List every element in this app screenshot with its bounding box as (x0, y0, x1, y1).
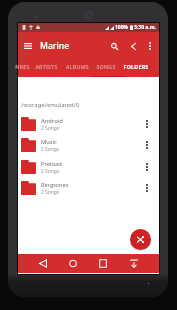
button[interactable]: More options (143, 39, 157, 53)
staticText: Marine (40, 40, 70, 52)
staticText: /storage/emulated/0 (21, 101, 80, 109)
button[interactable]: More options (139, 159, 155, 175)
staticText: Music (41, 138, 57, 146)
button[interactable]: Open navigation menu (21, 39, 35, 53)
button[interactable]: SONGS (89, 55, 123, 77)
staticText: 3:30 a.m. (134, 24, 156, 31)
button[interactable]: Equalizer (126, 39, 140, 53)
staticText: ALBUMS (66, 63, 89, 70)
staticText: SONGS (96, 63, 116, 70)
staticText: Preload (41, 160, 62, 168)
button[interactable]: More options (139, 180, 155, 196)
staticText: 2 Songs (41, 146, 60, 153)
button[interactable]: Recent apps (95, 254, 111, 270)
staticText: 100% (115, 24, 129, 31)
staticText: FOLDERS (123, 63, 149, 70)
staticText: Android (41, 117, 63, 125)
button[interactable]: Back (35, 254, 51, 270)
button[interactable]: Hide keyboard (126, 254, 142, 270)
staticText: NRES (15, 63, 30, 70)
staticText: ARTISTS (35, 63, 58, 70)
button[interactable]: Preload (18, 156, 159, 178)
staticText: 2 Songs (41, 189, 60, 196)
button[interactable]: FOLDERS (119, 55, 153, 77)
button[interactable]: Music (18, 134, 159, 156)
button[interactable]: Shuffle (130, 229, 151, 250)
button[interactable]: Android (18, 113, 159, 135)
button[interactable]: Search (107, 39, 121, 53)
button[interactable]: Home (65, 254, 81, 270)
button[interactable]: More options (139, 137, 155, 153)
button[interactable]: More options (139, 116, 155, 132)
staticText: Ringtones (41, 181, 69, 189)
button[interactable]: ALBUMS (60, 55, 94, 77)
button[interactable]: NRES (8, 55, 39, 77)
staticText: 2 Songs (41, 125, 60, 132)
button[interactable]: ARTISTS (29, 55, 63, 77)
button[interactable]: Ringtones (18, 177, 159, 199)
staticText: 2 Songs (41, 168, 60, 175)
